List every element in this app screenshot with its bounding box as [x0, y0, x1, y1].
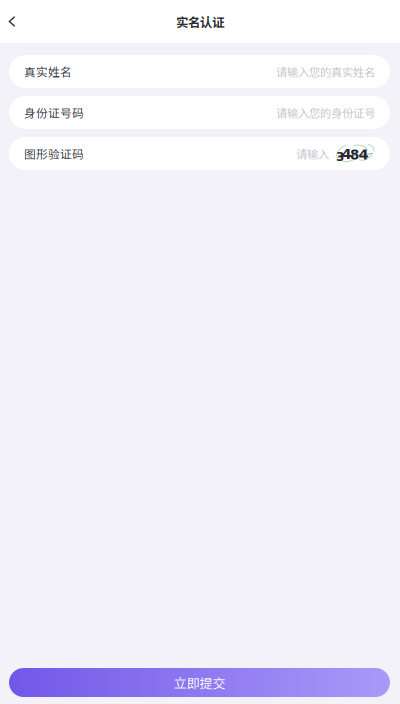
staticText: 实名认证 [176, 12, 224, 30]
staticText: 立即提交 [173, 673, 225, 692]
button[interactable]: 真实姓名 [9, 55, 390, 88]
button[interactable]: 图形验证码 [9, 137, 390, 170]
staticText: 8 [350, 147, 359, 162]
staticText: 4 [358, 146, 368, 163]
button[interactable]: Back [0, 7, 24, 35]
staticText: 真实姓名 [24, 63, 72, 80]
staticText: 4 [341, 145, 351, 163]
staticText: 请输入 [296, 145, 329, 162]
button[interactable]: 立即提交 [9, 668, 390, 697]
button[interactable]: Refresh captcha [335, 143, 375, 163]
staticText: 请输入您的真实姓名 [276, 63, 375, 80]
staticText: 身份证号码 [24, 104, 84, 121]
staticText: 请输入您的身份证号 [276, 104, 375, 121]
staticText: 3 [336, 150, 344, 164]
button[interactable]: 身份证号码 [9, 96, 390, 129]
staticText: 图形验证码 [24, 145, 84, 162]
